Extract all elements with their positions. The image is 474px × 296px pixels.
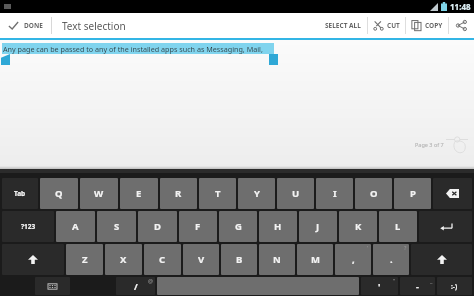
staticText: Y xyxy=(254,187,260,200)
button[interactable]: M xyxy=(297,244,333,275)
staticText: CUT xyxy=(387,21,400,30)
button[interactable]: Y xyxy=(238,178,275,209)
staticText: SELECT ALL xyxy=(325,21,361,30)
button[interactable]: Shift xyxy=(411,244,472,275)
staticText: Z xyxy=(82,253,88,266)
staticText: :-) xyxy=(451,282,458,291)
staticText: ' xyxy=(378,280,381,292)
staticText: J xyxy=(316,220,320,233)
staticText: F xyxy=(195,220,201,233)
button[interactable]: I xyxy=(316,178,353,209)
button[interactable]: T xyxy=(199,178,236,209)
button[interactable]: G xyxy=(219,211,257,242)
button[interactable]: Enter xyxy=(419,211,472,242)
staticText: B xyxy=(236,253,243,266)
staticText: @ xyxy=(148,277,153,284)
staticText: H xyxy=(274,220,282,233)
button[interactable]: Copy xyxy=(406,13,448,38)
staticText: R xyxy=(175,187,182,200)
button[interactable]: Cut xyxy=(368,13,405,38)
button[interactable]: Backspace xyxy=(433,178,472,209)
button[interactable]: U xyxy=(277,178,314,209)
staticText: A xyxy=(72,220,79,233)
staticText: P xyxy=(410,187,416,200)
staticText: 11:48 xyxy=(450,1,471,12)
staticText: . xyxy=(390,253,393,266)
button[interactable]: Tab xyxy=(2,178,38,209)
button[interactable]: D xyxy=(138,211,177,242)
staticText: D xyxy=(154,220,161,233)
staticText: ?123 xyxy=(21,222,36,231)
button[interactable]: H xyxy=(259,211,297,242)
staticText: U xyxy=(292,187,300,200)
button[interactable]: ?123 xyxy=(2,211,54,242)
button[interactable]: Any page can be passed to any of the ins… xyxy=(2,43,274,54)
staticText: G xyxy=(235,220,242,233)
button[interactable]: P xyxy=(394,178,431,209)
button[interactable]: S xyxy=(97,211,136,242)
button[interactable]: V xyxy=(183,244,219,275)
staticText: L xyxy=(395,220,401,233)
staticText: I xyxy=(333,187,337,200)
button[interactable]: B xyxy=(221,244,257,275)
staticText: DONE xyxy=(24,21,43,30)
staticText: O xyxy=(370,187,378,200)
button[interactable] xyxy=(1,54,10,65)
button[interactable]: C xyxy=(144,244,181,275)
staticText: Any page can be passed to any of the ins… xyxy=(3,44,274,54)
button[interactable]: L xyxy=(379,211,417,242)
button[interactable]: Shift xyxy=(2,244,64,275)
staticText: N xyxy=(273,253,281,266)
button[interactable]: R xyxy=(160,178,197,209)
staticText: , xyxy=(352,253,355,266)
button[interactable]: X xyxy=(105,244,142,275)
button[interactable]: . xyxy=(373,244,409,275)
staticText: X xyxy=(120,253,127,266)
staticText: _ xyxy=(430,277,433,284)
button[interactable]: F xyxy=(179,211,217,242)
staticText: ? xyxy=(404,244,407,251)
button[interactable]: Share xyxy=(449,13,474,38)
staticText: COPY xyxy=(425,21,443,30)
staticText: ' xyxy=(367,244,369,251)
button[interactable]: Q xyxy=(40,178,78,209)
button[interactable]: ' xyxy=(361,277,398,295)
staticText: Page 3 of 7 xyxy=(415,141,444,148)
button[interactable]: DONE xyxy=(0,13,51,38)
staticText: E xyxy=(136,187,142,200)
button[interactable]: , xyxy=(335,244,371,275)
staticText: " xyxy=(393,277,396,284)
button[interactable]: W xyxy=(80,178,118,209)
staticText: Text selection xyxy=(62,19,126,33)
button[interactable]: / xyxy=(116,277,155,295)
staticText: Tab xyxy=(14,189,26,198)
button[interactable]: O xyxy=(355,178,392,209)
button[interactable]: Keyboard settings xyxy=(35,277,70,295)
staticText: W xyxy=(94,187,104,200)
button[interactable]: A xyxy=(56,211,95,242)
button[interactable]: K xyxy=(339,211,377,242)
staticText: M xyxy=(311,253,320,266)
button[interactable]: E xyxy=(120,178,158,209)
staticText: - xyxy=(416,280,419,292)
button[interactable]: Z xyxy=(66,244,103,275)
staticText: / xyxy=(134,280,138,292)
staticText: K xyxy=(355,220,362,233)
button[interactable]: :-) xyxy=(437,277,472,295)
staticText: T xyxy=(215,187,221,200)
button[interactable]: J xyxy=(299,211,337,242)
staticText: V xyxy=(198,253,205,266)
button[interactable]: - xyxy=(400,277,435,295)
staticText: S xyxy=(114,220,120,233)
button[interactable]: N xyxy=(259,244,295,275)
staticText: C xyxy=(159,253,166,266)
staticText: Q xyxy=(55,187,63,200)
button[interactable]: SELECT ALL xyxy=(319,13,367,38)
